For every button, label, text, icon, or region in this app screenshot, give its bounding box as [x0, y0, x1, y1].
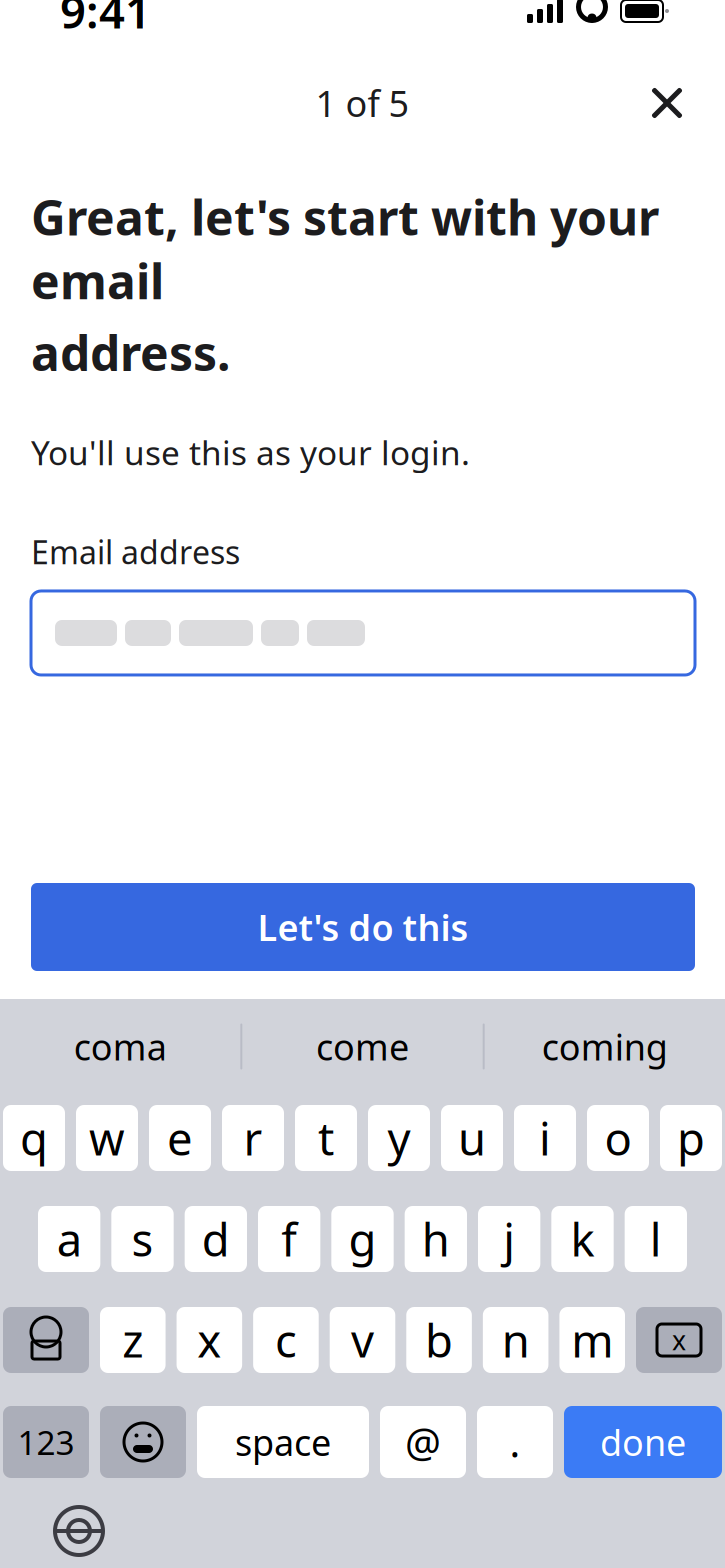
button[interactable]: y: [368, 1105, 430, 1171]
button[interactable]: Shift: [3, 1307, 89, 1373]
staticText: 1 of 5: [315, 79, 409, 127]
button[interactable]: o: [587, 1105, 649, 1171]
staticText: l: [650, 1209, 662, 1269]
button[interactable]: b: [406, 1307, 472, 1373]
button[interactable]: v: [330, 1307, 395, 1373]
button[interactable]: 123: [3, 1406, 89, 1478]
staticText: b: [425, 1310, 453, 1370]
staticText: z: [122, 1310, 143, 1370]
button[interactable]: p: [660, 1105, 722, 1171]
button[interactable]: j: [478, 1206, 540, 1272]
button[interactable]: t: [295, 1105, 357, 1171]
staticText: space: [235, 1418, 331, 1466]
button[interactable]: k: [551, 1206, 614, 1272]
staticText: j: [503, 1209, 515, 1269]
staticText: p: [677, 1108, 705, 1168]
button[interactable]: h: [405, 1206, 467, 1272]
staticText: v: [351, 1310, 374, 1370]
staticText: u: [458, 1108, 486, 1168]
staticText: s: [131, 1209, 153, 1269]
button[interactable]: e: [149, 1105, 211, 1171]
button[interactable]: q: [3, 1105, 65, 1171]
button[interactable]: come: [242, 999, 483, 1094]
staticText: a: [57, 1209, 82, 1269]
button[interactable]: r: [222, 1105, 284, 1171]
staticText: y: [387, 1108, 410, 1168]
button[interactable]: @: [380, 1406, 466, 1478]
button[interactable]: u: [441, 1105, 503, 1171]
button[interactable]: i: [514, 1105, 576, 1171]
staticText: coming: [542, 1023, 668, 1070]
staticText: c: [275, 1310, 297, 1370]
button[interactable]: Change keyboard: [44, 1496, 114, 1566]
button[interactable]: g: [331, 1206, 394, 1272]
button[interactable]: Close: [627, 63, 707, 143]
staticText: address.: [31, 320, 230, 384]
staticText: come: [316, 1023, 409, 1070]
staticText: i: [539, 1108, 551, 1168]
staticText: q: [20, 1108, 48, 1168]
button[interactable]: z: [100, 1307, 166, 1373]
staticText: m: [571, 1310, 613, 1370]
staticText: x: [672, 1322, 686, 1358]
button[interactable]: w: [76, 1105, 138, 1171]
staticText: h: [422, 1209, 450, 1269]
staticText: x: [197, 1310, 221, 1370]
staticText: done: [600, 1418, 686, 1466]
staticText: g: [348, 1209, 376, 1269]
button[interactable]: .: [477, 1406, 553, 1478]
button[interactable]: coming: [485, 999, 725, 1094]
staticText: w: [89, 1108, 125, 1168]
staticText: Let's do this: [257, 903, 468, 951]
staticText: coma: [74, 1023, 167, 1070]
button[interactable]: f: [258, 1206, 320, 1272]
button[interactable]: Let's do this: [31, 883, 695, 971]
staticText: .: [509, 1415, 520, 1468]
staticText: f: [281, 1209, 297, 1269]
staticText: @: [405, 1415, 441, 1468]
staticText: 9:41: [60, 0, 151, 41]
staticText: t: [318, 1108, 334, 1168]
button[interactable]: Emoji: [100, 1406, 186, 1478]
button[interactable]: coma: [0, 999, 240, 1094]
staticText: n: [502, 1310, 530, 1370]
button[interactable]: c: [253, 1307, 319, 1373]
staticText: d: [202, 1209, 230, 1269]
staticText: r: [243, 1108, 262, 1168]
button[interactable]: Delete: [636, 1307, 722, 1373]
staticText: o: [604, 1108, 631, 1168]
button[interactable]: Email address text field: [31, 591, 695, 675]
staticText: Email address: [31, 530, 240, 573]
button[interactable]: done: [564, 1406, 722, 1478]
button[interactable]: m: [559, 1307, 625, 1373]
button[interactable]: n: [483, 1307, 548, 1373]
staticText: You'll use this as your login.: [31, 430, 470, 474]
button[interactable]: space: [197, 1406, 369, 1478]
button[interactable]: s: [111, 1206, 174, 1272]
button[interactable]: d: [185, 1206, 247, 1272]
staticText: k: [570, 1209, 594, 1269]
staticText: e: [167, 1108, 193, 1168]
button[interactable]: l: [625, 1206, 687, 1272]
staticText: 123: [17, 1420, 74, 1464]
staticText: Great, let's start with your email: [31, 185, 659, 312]
button[interactable]: a: [38, 1206, 100, 1272]
button[interactable]: x: [177, 1307, 242, 1373]
